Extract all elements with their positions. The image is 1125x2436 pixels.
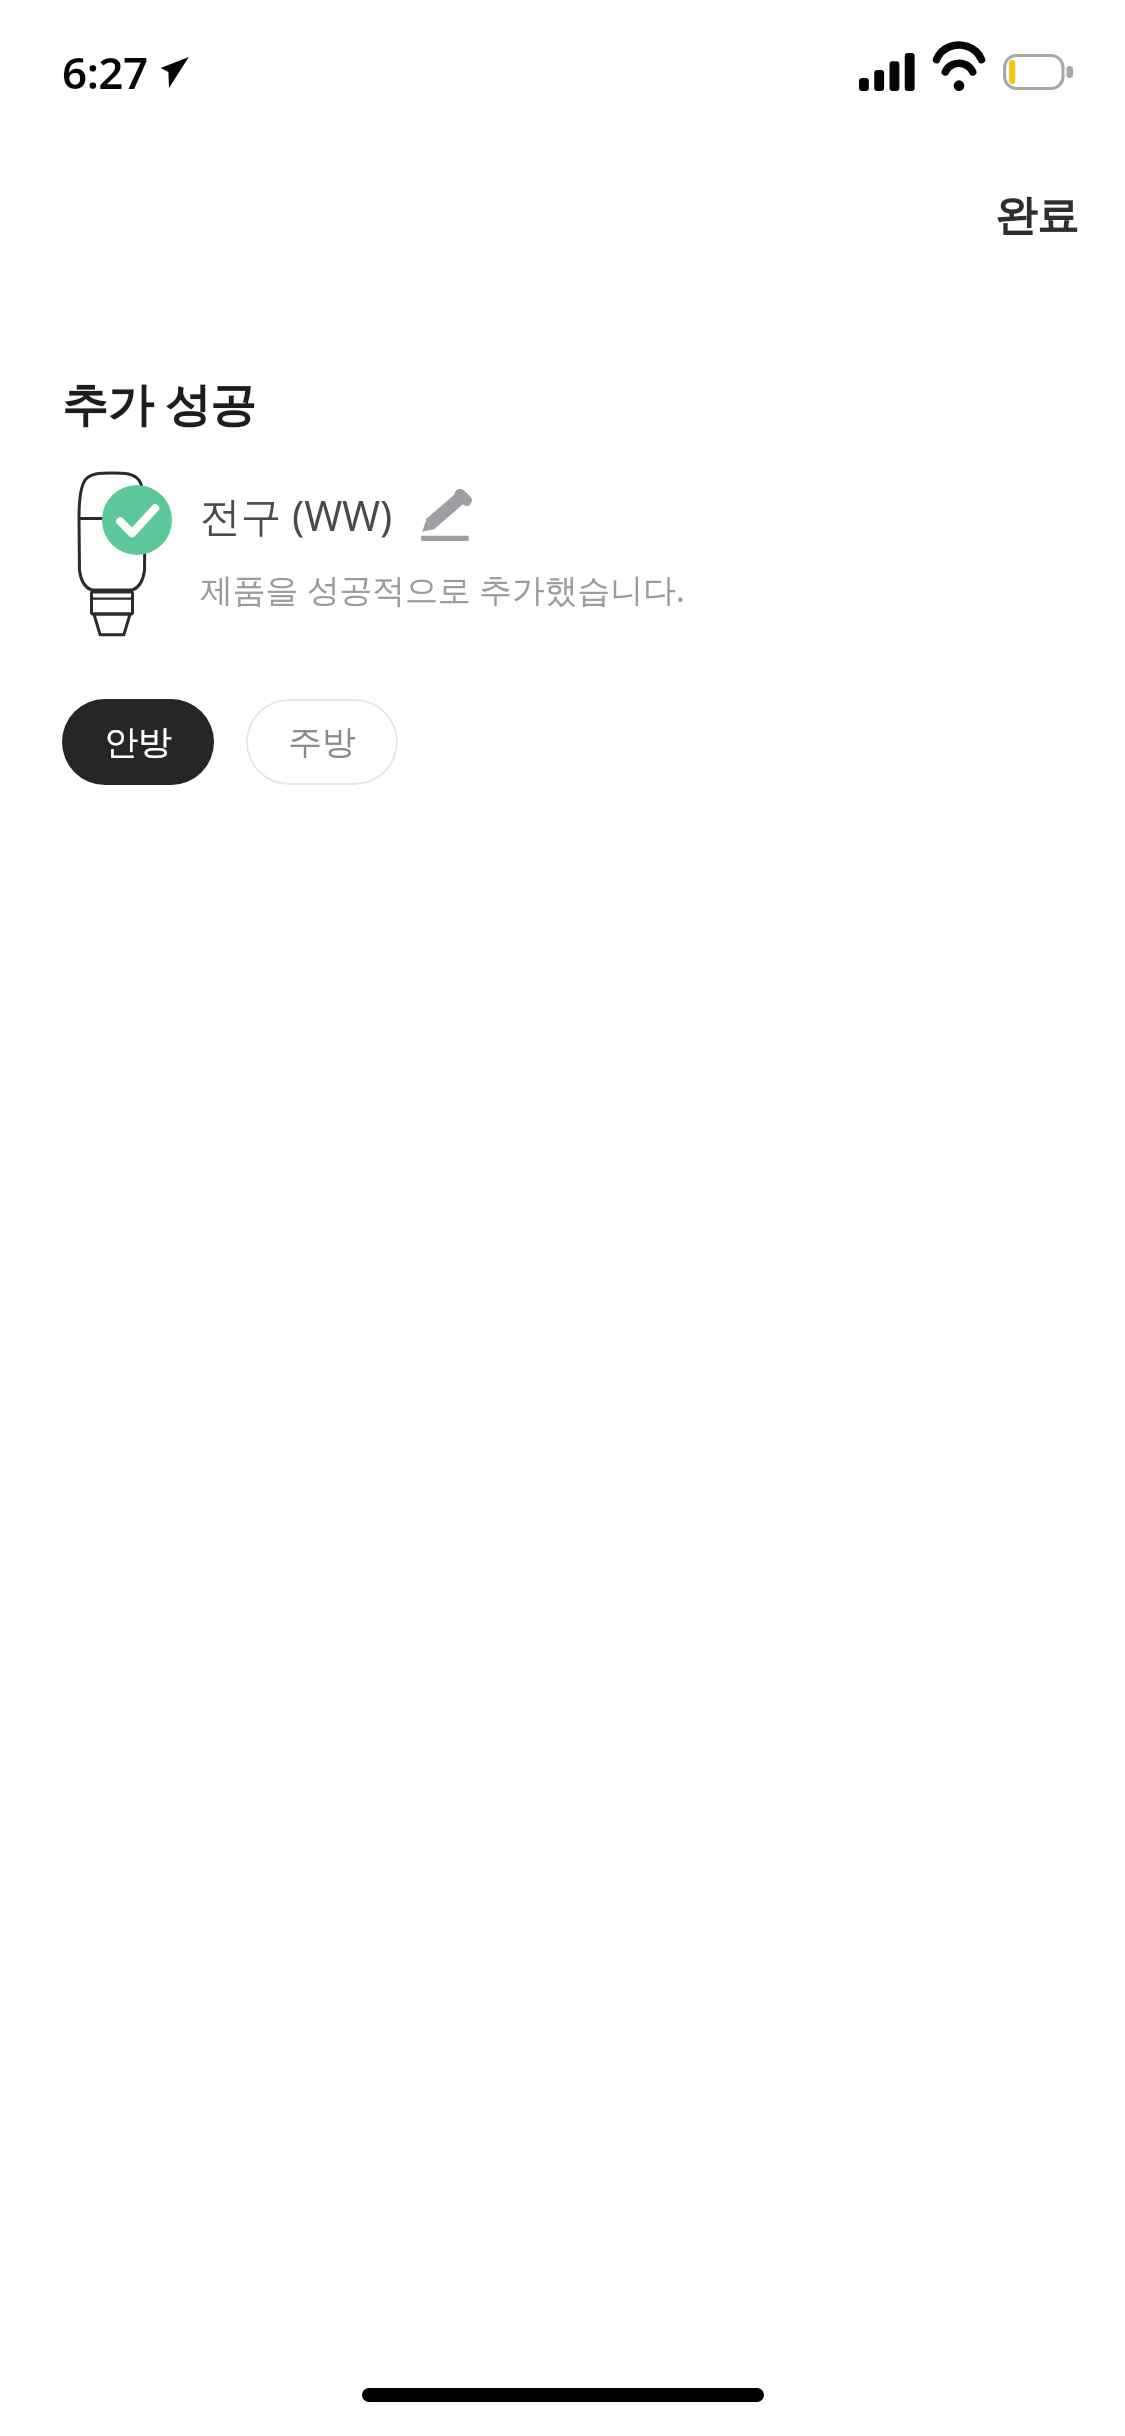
staticText: 6:27: [62, 42, 148, 102]
staticText: 제품을 성공적으로 추가했습니다.: [200, 567, 685, 612]
button[interactable]: 안방: [62, 699, 214, 785]
staticText: 주방: [288, 721, 356, 764]
button[interactable]: 전구 (WW): [0, 467, 1125, 639]
staticText: 추가 성공: [62, 372, 256, 435]
button[interactable]: Rename device: [415, 485, 477, 545]
button[interactable]: 완료: [949, 178, 1125, 255]
button[interactable]: 주방: [246, 699, 398, 785]
staticText: 전구 (WW): [200, 487, 393, 543]
staticText: 안방: [104, 721, 172, 764]
staticText: 완료: [995, 190, 1079, 243]
